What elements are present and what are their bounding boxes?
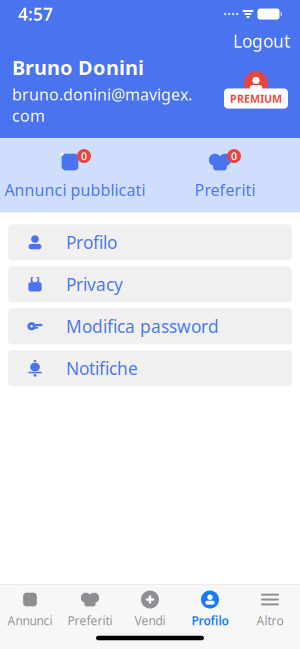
button[interactable]: 0 bbox=[150, 138, 300, 212]
staticText: Preferiti bbox=[194, 179, 255, 200]
staticText: Annunci pubblicati bbox=[4, 179, 145, 200]
button[interactable]: Privacy bbox=[8, 266, 292, 302]
button[interactable]: Profilo bbox=[8, 224, 292, 260]
button[interactable]: Modifica password bbox=[8, 308, 292, 344]
staticText: 0 bbox=[231, 149, 237, 163]
staticText: Notifiche bbox=[66, 357, 138, 380]
button[interactable]: 0 bbox=[0, 138, 150, 212]
staticText: Vendi bbox=[134, 612, 165, 628]
staticText: Altro bbox=[256, 612, 283, 628]
button[interactable]: Preferiti bbox=[60, 583, 120, 628]
staticText: 4:57 bbox=[18, 2, 53, 25]
staticText: Profilo bbox=[191, 612, 228, 628]
button[interactable]: Logout bbox=[223, 25, 300, 56]
staticText: Modifica password bbox=[66, 315, 219, 338]
staticText: bruno.donini@mavigex.com bbox=[12, 84, 192, 126]
button[interactable]: Vendi bbox=[120, 583, 180, 628]
staticText: Logout bbox=[233, 29, 290, 52]
staticText: Bruno Donini bbox=[12, 54, 144, 81]
button[interactable]: Profilo bbox=[180, 583, 240, 628]
button[interactable]: Notifiche bbox=[8, 350, 292, 386]
button[interactable]: Annunci bbox=[0, 583, 60, 628]
staticText: Profilo bbox=[66, 231, 117, 254]
staticText: 0 bbox=[81, 149, 87, 163]
staticText: Preferiti bbox=[67, 612, 112, 628]
button[interactable]: Altro bbox=[240, 583, 300, 628]
staticText: Privacy bbox=[66, 273, 123, 296]
staticText: PREMIUM bbox=[230, 91, 282, 106]
staticText: Annunci bbox=[7, 612, 52, 628]
